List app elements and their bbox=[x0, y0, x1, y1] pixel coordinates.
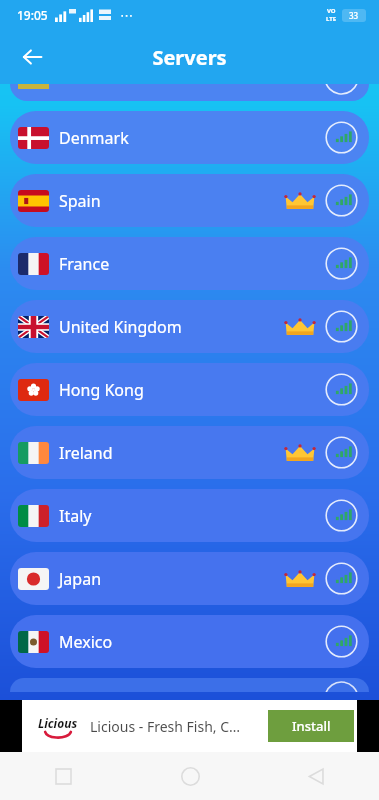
button[interactable]: Mexico bbox=[10, 615, 369, 668]
staticText: Japan bbox=[59, 568, 102, 590]
button[interactable] bbox=[10, 678, 369, 692]
staticText: Mexico bbox=[59, 631, 113, 653]
button[interactable]: Italy bbox=[10, 489, 369, 542]
button[interactable]: France bbox=[10, 237, 369, 290]
staticText: 19:05 bbox=[17, 7, 48, 23]
staticText: Spain bbox=[59, 190, 101, 212]
button[interactable]: Hong Kong bbox=[10, 363, 369, 416]
staticText: Ireland bbox=[59, 442, 113, 464]
button[interactable]: Japan bbox=[10, 552, 369, 605]
staticText: Hong Kong bbox=[59, 379, 144, 401]
staticText: Licious - Fresh Fish, C… bbox=[90, 717, 241, 736]
button[interactable]: Denmark bbox=[10, 111, 369, 164]
staticText: 33 bbox=[349, 10, 359, 21]
staticText: France bbox=[59, 253, 110, 275]
staticText: LTE bbox=[326, 15, 337, 23]
staticText: Servers bbox=[152, 44, 227, 71]
staticText: United Kingdom bbox=[59, 316, 182, 338]
button[interactable]: United Kingdom bbox=[10, 300, 369, 353]
staticText: Licious bbox=[38, 715, 78, 731]
staticText: VO bbox=[327, 7, 336, 15]
staticText: Italy bbox=[59, 505, 92, 527]
button[interactable] bbox=[10, 84, 369, 101]
button[interactable]: Spain bbox=[10, 174, 369, 227]
staticText: ⋯ bbox=[120, 8, 133, 23]
button[interactable]: Back bbox=[10, 35, 54, 79]
button[interactable]: Install bbox=[268, 710, 354, 742]
staticText: Install bbox=[292, 717, 331, 735]
button[interactable]: Licious bbox=[22, 700, 357, 752]
button[interactable]: Ireland bbox=[10, 426, 369, 479]
staticText: Denmark bbox=[59, 127, 129, 149]
